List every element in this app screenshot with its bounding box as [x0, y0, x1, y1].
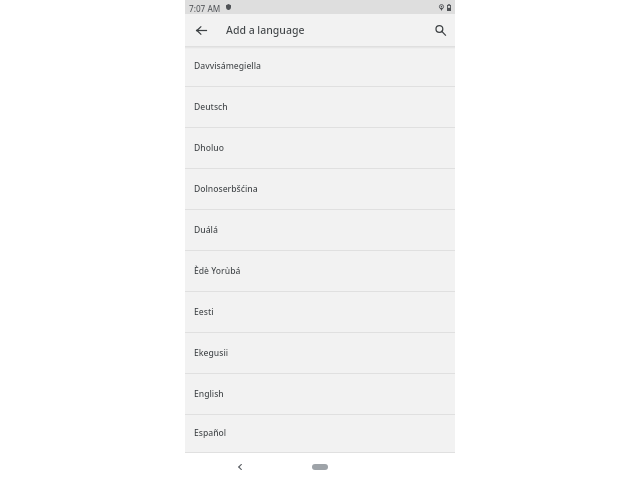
button[interactable]: Dolnoserbšćina [185, 169, 455, 210]
button[interactable]: Back [233, 460, 247, 474]
staticText: English [194, 388, 224, 400]
button[interactable]: Home [312, 464, 328, 470]
staticText: Dolnoserbšćina [194, 183, 258, 195]
staticText: Add a language [226, 23, 305, 37]
button[interactable]: Deutsch [185, 87, 455, 128]
staticText: Duálá [194, 224, 218, 236]
staticText: 7:07 AM [189, 3, 221, 14]
button[interactable]: Español [185, 415, 455, 453]
button[interactable]: English [185, 374, 455, 415]
button[interactable]: Eesti [185, 292, 455, 333]
button[interactable]: Dholuo [185, 128, 455, 169]
staticText: Èdè Yorùbá [194, 265, 241, 277]
button[interactable]: Èdè Yorùbá [185, 251, 455, 292]
button[interactable]: Navigate up [190, 19, 212, 41]
staticText: Eesti [194, 306, 214, 318]
staticText: Dholuo [194, 142, 224, 154]
button[interactable]: Davvisámegiella [185, 46, 455, 87]
staticText: Ekegusii [194, 347, 229, 359]
staticText: Davvisámegiella [194, 60, 261, 72]
button[interactable]: Ekegusii [185, 333, 455, 374]
button[interactable]: Search [429, 19, 451, 41]
staticText: Deutsch [194, 101, 228, 113]
button[interactable]: Duálá [185, 210, 455, 251]
staticText: Español [194, 427, 227, 439]
